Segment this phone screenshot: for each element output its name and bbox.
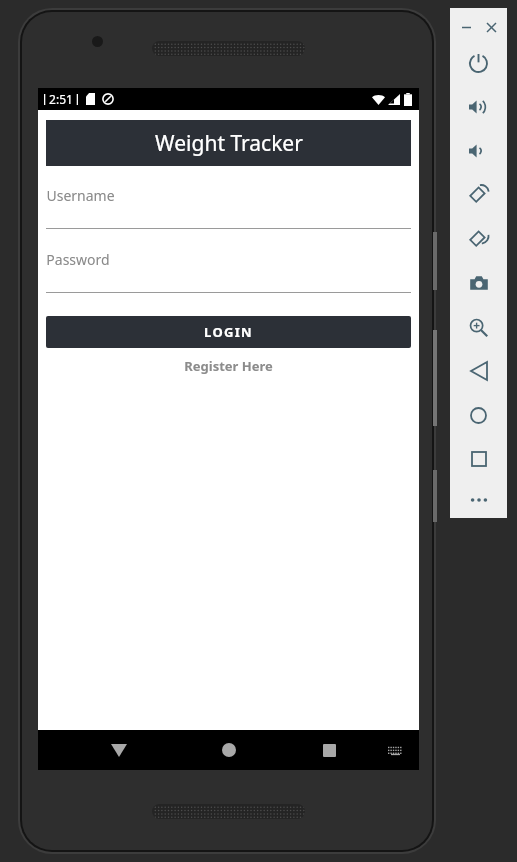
button[interactable]: Username: [46, 186, 411, 229]
button[interactable]: More: [450, 481, 507, 518]
button[interactable]: Recent apps: [311, 732, 347, 768]
button[interactable]: Register Here: [46, 357, 411, 375]
button[interactable]: Home: [211, 732, 247, 768]
button[interactable]: Switch keyboard: [380, 735, 410, 765]
staticText: Username: [46, 186, 115, 205]
button[interactable]: Overview: [450, 437, 507, 481]
button[interactable]: Password: [46, 250, 411, 293]
staticText: Weight Tracker: [155, 129, 303, 158]
staticText: LOGIN: [204, 323, 253, 341]
button[interactable]: Rotate left: [450, 173, 507, 217]
button[interactable]: Rotate right: [450, 217, 507, 261]
button[interactable]: Volume down: [450, 129, 507, 173]
button[interactable]: Zoom: [450, 305, 507, 349]
button[interactable]: Back: [450, 349, 507, 393]
staticText: 2:51: [49, 91, 73, 107]
button[interactable]: Screenshot: [450, 261, 507, 305]
button[interactable]: LOGIN: [46, 316, 411, 348]
button[interactable]: Power: [450, 41, 507, 85]
button[interactable]: Minimize: [457, 18, 475, 36]
button[interactable]: Volume up: [450, 85, 507, 129]
button[interactable]: Back: [101, 732, 137, 768]
staticText: Password: [46, 250, 110, 269]
button[interactable]: Home: [450, 393, 507, 437]
staticText: Register Here: [184, 357, 273, 375]
button[interactable]: Close: [482, 18, 500, 36]
